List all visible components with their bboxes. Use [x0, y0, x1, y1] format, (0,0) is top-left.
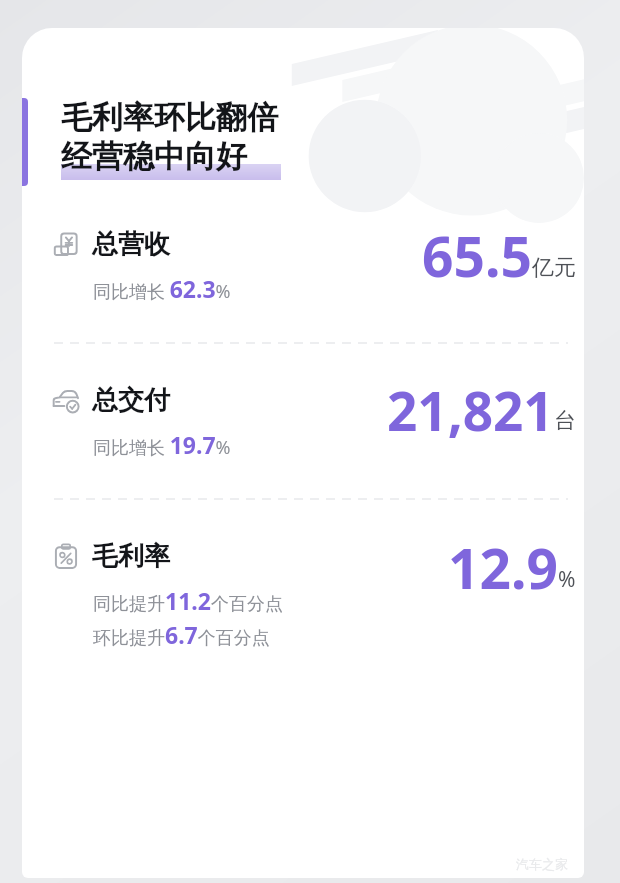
staticText: 亿元 — [532, 254, 576, 282]
button[interactable]: Total deliveries — [22, 384, 584, 460]
staticText: 同比增长 19.7% — [93, 429, 231, 460]
button[interactable]: Total revenue — [22, 228, 584, 304]
button[interactable]: Gross margin — [22, 540, 584, 650]
staticText: 12.9 — [448, 530, 558, 605]
staticText: 同比提升11.2个百分点 — [93, 585, 283, 616]
staticText: 同比增长 62.3% — [93, 273, 231, 304]
staticText: 环比提升6.7个百分点 — [93, 619, 270, 650]
staticText: 毛利率 — [92, 540, 170, 573]
staticText: 汽车之家 — [516, 856, 568, 872]
staticText: 总交付 — [92, 384, 170, 417]
staticText: 总营收 — [92, 228, 170, 261]
other: Gross margin — [52, 543, 80, 571]
other: Total deliveries — [52, 387, 80, 415]
staticText: 经营稳中向好 — [61, 137, 247, 176]
staticText: 21,821 — [387, 374, 554, 446]
staticText: 毛利率环比翻倍 — [61, 98, 278, 137]
staticText: 台 — [554, 407, 576, 435]
staticText: % — [558, 565, 576, 594]
staticText: 65.5 — [422, 218, 532, 293]
other: Total revenue — [52, 231, 80, 259]
